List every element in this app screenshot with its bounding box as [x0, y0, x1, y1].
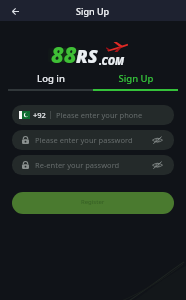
button[interactable]: Sign Up — [93, 61, 178, 91]
staticText: RS — [76, 44, 98, 69]
button[interactable]: Log in — [8, 61, 93, 91]
button[interactable]: Please enter your password — [12, 130, 174, 150]
staticText: Register — [81, 198, 105, 206]
staticText: Sign Up — [118, 72, 154, 85]
staticText: Please enter your phone — [56, 110, 143, 120]
button[interactable]: Register — [12, 192, 174, 214]
staticText: .COM — [99, 54, 125, 68]
staticText: Log in — [37, 72, 65, 85]
staticText: Sign Up — [76, 5, 110, 17]
staticText: Please enter your password — [35, 135, 133, 145]
button[interactable]: Show password — [149, 157, 165, 173]
staticText: 88 — [51, 39, 77, 69]
button[interactable]: Back — [7, 3, 24, 20]
button[interactable]: Re-enter your password — [12, 155, 174, 175]
button[interactable]: Show password — [149, 132, 165, 148]
button[interactable]: +92 — [12, 105, 174, 125]
staticText: Re-enter your password — [35, 160, 120, 170]
staticText: +92 — [33, 110, 46, 120]
